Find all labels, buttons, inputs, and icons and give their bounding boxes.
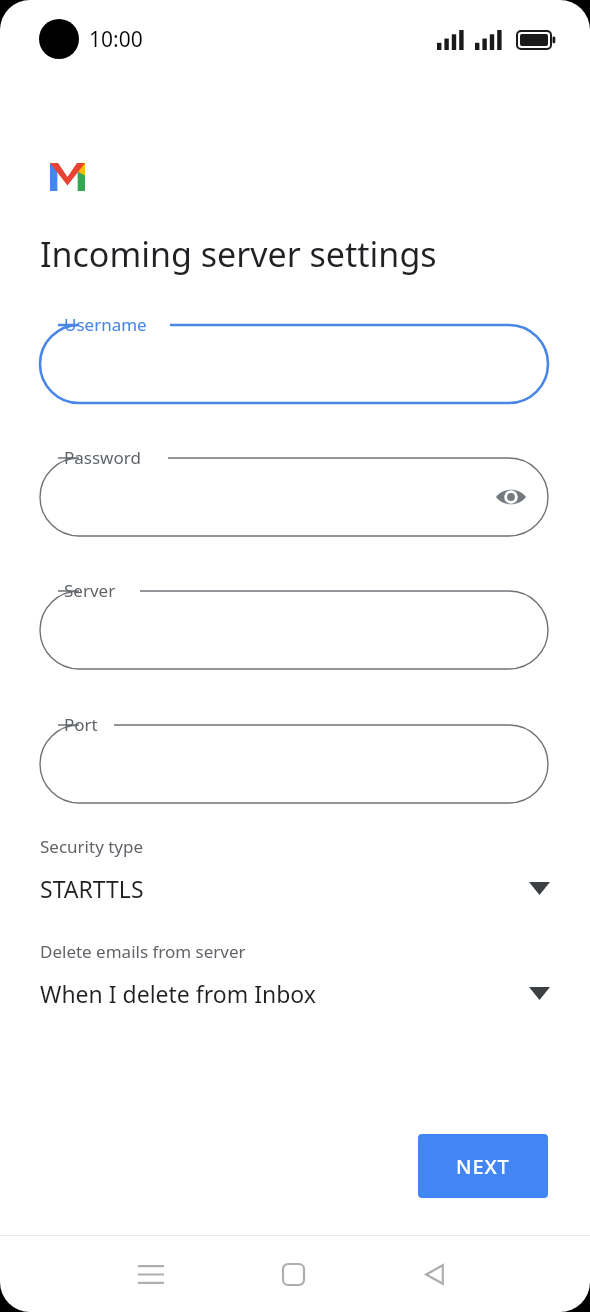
staticText: Incoming server settings xyxy=(40,231,437,277)
button[interactable]: Recent apps xyxy=(121,1244,181,1304)
staticText: Password xyxy=(64,446,141,469)
staticText: Username xyxy=(64,313,147,336)
staticText: Port xyxy=(64,713,98,736)
staticText: When I delete from Inbox xyxy=(40,978,529,1009)
button[interactable]: Security type xyxy=(0,835,590,904)
button[interactable]: Port xyxy=(0,703,590,803)
button[interactable]: NEXT xyxy=(418,1134,548,1198)
button[interactable]: Delete emails from server xyxy=(0,940,590,1009)
button[interactable]: Back xyxy=(404,1244,464,1304)
button[interactable]: Home xyxy=(263,1244,323,1304)
staticText: Security type xyxy=(40,835,144,858)
staticText: STARTTLS xyxy=(40,873,529,904)
staticText: Delete emails from server xyxy=(40,940,246,963)
staticText: Server xyxy=(64,579,116,602)
staticText: 10:00 xyxy=(89,25,143,54)
button[interactable]: Server xyxy=(0,569,590,669)
staticText: NEXT xyxy=(456,1153,510,1180)
button[interactable]: Password xyxy=(0,436,590,536)
button[interactable]: Username xyxy=(0,303,590,403)
